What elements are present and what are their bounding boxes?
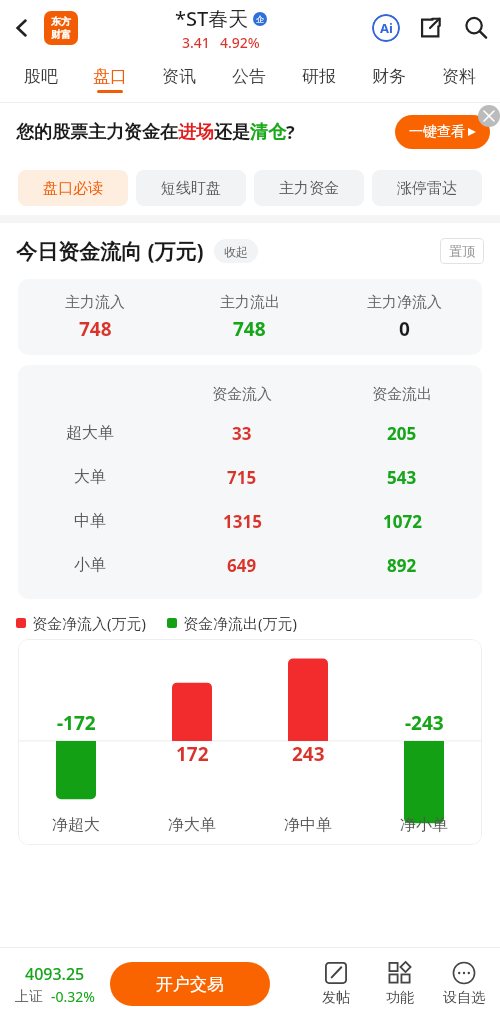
staticText: 您的股票主力资金在	[16, 121, 178, 144]
staticText: 543	[387, 466, 417, 489]
staticText: 东方	[51, 15, 71, 28]
staticText: 中单	[74, 511, 106, 531]
button[interactable]: AI	[364, 6, 408, 50]
staticText: 净小单	[400, 815, 448, 835]
staticText: 研报	[302, 66, 336, 87]
button[interactable]: 收起	[224, 239, 248, 263]
staticText: 净超大	[52, 815, 100, 835]
staticText: 33	[232, 422, 252, 445]
button[interactable]: 主力流入	[18, 279, 482, 355]
button[interactable]: 资讯	[144, 56, 214, 102]
button[interactable]: 短线盯盘	[136, 170, 246, 206]
staticText: 主力流入	[65, 293, 125, 312]
staticText: 短线盯盘	[161, 179, 221, 198]
staticText: 还是	[214, 121, 250, 144]
staticText: 715	[227, 466, 257, 489]
button[interactable]: Search	[452, 4, 500, 52]
button[interactable]: 股吧	[6, 56, 75, 102]
staticText: 收起	[224, 244, 248, 259]
button[interactable]: Close	[478, 105, 500, 127]
button[interactable]: Back	[0, 0, 44, 56]
staticText: 净中单	[284, 815, 332, 835]
staticText: 1315	[223, 510, 262, 533]
staticText: 公告	[232, 66, 266, 87]
staticText: 资金净流入(万元)	[32, 613, 147, 633]
staticText: 大单	[74, 467, 106, 487]
staticText: 上证	[15, 988, 43, 1006]
staticText: 小单	[74, 555, 106, 575]
staticText: 主力流出	[220, 293, 280, 312]
staticText: 置顶	[449, 243, 475, 259]
button[interactable]: 发帖	[304, 961, 368, 1007]
staticText: 4.92%	[220, 33, 260, 52]
staticText: 892	[387, 554, 417, 577]
staticText: 今日资金流向 (万元)	[16, 237, 204, 266]
staticText: 243	[292, 741, 325, 767]
staticText: 649	[227, 554, 257, 577]
staticText: 3.41	[182, 33, 210, 52]
staticText: 资讯	[162, 66, 196, 87]
staticText: 净大单	[168, 815, 216, 835]
staticText: 开户交易	[156, 974, 224, 995]
staticText: 一键查看	[409, 123, 465, 141]
staticText: 资料	[442, 66, 476, 87]
staticText: 主力净流入	[367, 293, 442, 312]
staticText: 748	[79, 316, 112, 342]
staticText: ?	[286, 120, 295, 145]
button[interactable]: 盘口必读	[18, 170, 128, 206]
staticText: 0	[399, 316, 410, 342]
staticText: *ST春天	[175, 5, 249, 32]
staticText: 资金净流出(万元)	[183, 613, 298, 633]
staticText: -172	[57, 710, 96, 736]
button[interactable]: 研报	[284, 56, 354, 102]
staticText: Ai	[380, 19, 393, 37]
staticText: 功能	[386, 989, 414, 1007]
button[interactable]: 中单	[18, 499, 482, 543]
staticText: 资金流入	[212, 385, 272, 404]
staticText: 205	[387, 422, 417, 445]
button[interactable]: 公告	[214, 56, 284, 102]
staticText: 1072	[383, 510, 422, 533]
staticText: -243	[405, 710, 444, 736]
button[interactable]: 盘口	[75, 56, 144, 102]
button[interactable]: 设自选	[432, 961, 496, 1007]
staticText: 涨停雷达	[397, 179, 457, 198]
staticText: 盘口必读	[43, 179, 103, 198]
staticText: 股吧	[24, 66, 58, 87]
staticText: -0.32%	[51, 987, 95, 1006]
button[interactable]: 大单	[18, 455, 482, 499]
staticText: 主力资金	[279, 179, 339, 198]
button[interactable]: 开户交易	[110, 962, 270, 1006]
button[interactable]: 4093.25	[0, 963, 110, 1006]
staticText: 清仓	[250, 121, 286, 144]
staticText: 超大单	[66, 423, 114, 443]
button[interactable]: 置顶	[449, 238, 475, 264]
staticText: 进场	[178, 121, 214, 144]
button[interactable]: 资料	[424, 56, 494, 102]
staticText: 资金流出	[372, 385, 432, 404]
staticText: 748	[233, 316, 266, 342]
button[interactable]: Share	[408, 6, 452, 50]
button[interactable]: 一键查看	[409, 115, 476, 149]
button[interactable]: 小单	[18, 543, 482, 587]
staticText: 172	[176, 741, 209, 767]
staticText: 财务	[372, 66, 406, 87]
button[interactable]: 主力资金	[254, 170, 364, 206]
button[interactable]: 涨停雷达	[372, 170, 482, 206]
staticText: 企	[256, 14, 264, 24]
staticText: 设自选	[443, 989, 485, 1007]
staticText: 发帖	[322, 989, 350, 1007]
button[interactable]: 财务	[354, 56, 424, 102]
button[interactable]: 功能	[368, 961, 432, 1007]
staticText: 盘口	[93, 66, 127, 87]
staticText: 4093.25	[25, 963, 85, 985]
button[interactable]: East Money logo	[44, 11, 78, 45]
staticText: 财富	[51, 28, 71, 41]
button[interactable]: 超大单	[18, 411, 482, 455]
